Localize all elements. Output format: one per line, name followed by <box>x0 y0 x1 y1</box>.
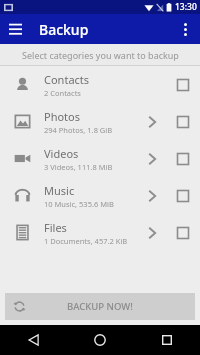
button[interactable]: Select Photos <box>166 103 200 140</box>
staticText: 10 Music, 535.6 MiB <box>44 199 114 209</box>
staticText: 294 Photos, 1.8 GiB <box>44 125 113 135</box>
staticText: 3 Videos, 111.8 MiB <box>44 162 113 172</box>
button[interactable]: Select Contacts <box>166 66 200 103</box>
staticText: 2 Contacts <box>44 88 81 98</box>
button[interactable]: Videos <box>0 140 200 177</box>
button[interactable]: Select Music <box>166 177 200 214</box>
button[interactable]: Contacts <box>0 66 200 103</box>
button[interactable]: BACKUP NOW! <box>5 293 195 320</box>
staticText: Select categories you want to backup <box>22 49 179 61</box>
button[interactable]: Select Videos <box>166 140 200 177</box>
button[interactable]: Home <box>66 325 133 355</box>
button[interactable]: Open navigation menu <box>0 14 30 44</box>
staticText: Videos <box>44 146 79 161</box>
staticText: Files <box>44 220 67 235</box>
staticText: Backup <box>39 20 89 39</box>
staticText: Contacts <box>44 72 90 87</box>
button[interactable]: Back <box>0 325 66 355</box>
staticText: 1 Documents, 457.2 KiB <box>44 236 128 246</box>
staticText: Photos <box>44 109 81 124</box>
button[interactable]: Files <box>0 214 200 251</box>
staticText: BACKUP NOW! <box>67 300 133 313</box>
staticText: Music <box>44 183 75 198</box>
button[interactable]: More options <box>170 14 200 44</box>
button[interactable]: Recent apps <box>133 325 200 355</box>
button[interactable]: Select Files <box>166 214 200 251</box>
button[interactable]: Photos <box>0 103 200 140</box>
button[interactable]: Music <box>0 177 200 214</box>
staticText: 13:30 <box>175 1 197 13</box>
